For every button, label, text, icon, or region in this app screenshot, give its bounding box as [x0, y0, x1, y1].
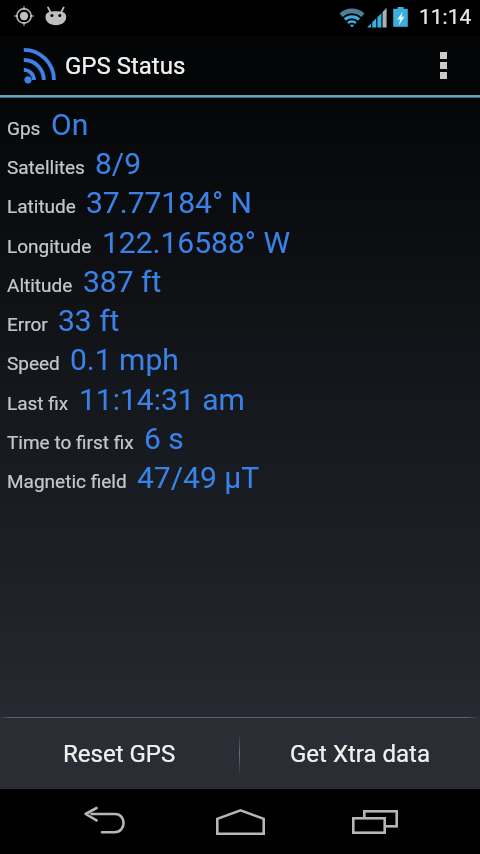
staticText: On [51, 107, 89, 142]
button[interactable]: Satellites [0, 142, 480, 181]
button[interactable]: Altitude [0, 260, 480, 299]
staticText: Gps [7, 117, 41, 139]
staticText: 33 ft [58, 303, 120, 338]
staticText: 8/9 [95, 146, 142, 181]
button[interactable]: Recent apps [331, 789, 419, 854]
button[interactable]: Gps [0, 103, 480, 142]
staticText: 6 s [144, 421, 184, 456]
staticText: 11:14:31 am [79, 382, 245, 417]
staticText: Reset GPS [63, 740, 176, 768]
button[interactable]: Reset GPS [0, 718, 239, 789]
button[interactable]: Get Xtra data [240, 718, 480, 789]
staticText: Longitude [7, 235, 92, 257]
button[interactable]: More options [426, 36, 480, 95]
button[interactable]: Magnetic field [0, 456, 480, 495]
staticText: 122.16588° W [102, 225, 291, 260]
button[interactable]: Time to first fix [0, 417, 480, 456]
staticText: Speed [7, 352, 60, 374]
staticText: Get Xtra data [290, 740, 430, 768]
button[interactable]: Home [196, 789, 284, 854]
staticText: Magnetic field [7, 470, 127, 492]
button[interactable]: Back [62, 789, 150, 854]
staticText: Altitude [7, 274, 73, 296]
staticText: Latitude [7, 195, 76, 217]
staticText: 0.1 mph [70, 342, 179, 377]
staticText: 387 ft [83, 264, 162, 299]
button[interactable]: Last fix [0, 378, 480, 417]
staticText: Time to first fix [7, 431, 134, 453]
staticText: 47/49 µT [137, 460, 260, 495]
button[interactable]: Latitude [0, 181, 480, 220]
staticText: GPS Status [65, 52, 186, 80]
staticText: Satellites [7, 156, 85, 178]
staticText: Last fix [7, 392, 69, 414]
button[interactable]: Error [0, 299, 480, 338]
button[interactable]: Longitude [0, 221, 480, 260]
staticText: Error [7, 313, 48, 335]
staticText: 37.77184° N [86, 185, 252, 220]
staticText: 11:14 [419, 5, 472, 30]
button[interactable]: Speed [0, 338, 480, 377]
